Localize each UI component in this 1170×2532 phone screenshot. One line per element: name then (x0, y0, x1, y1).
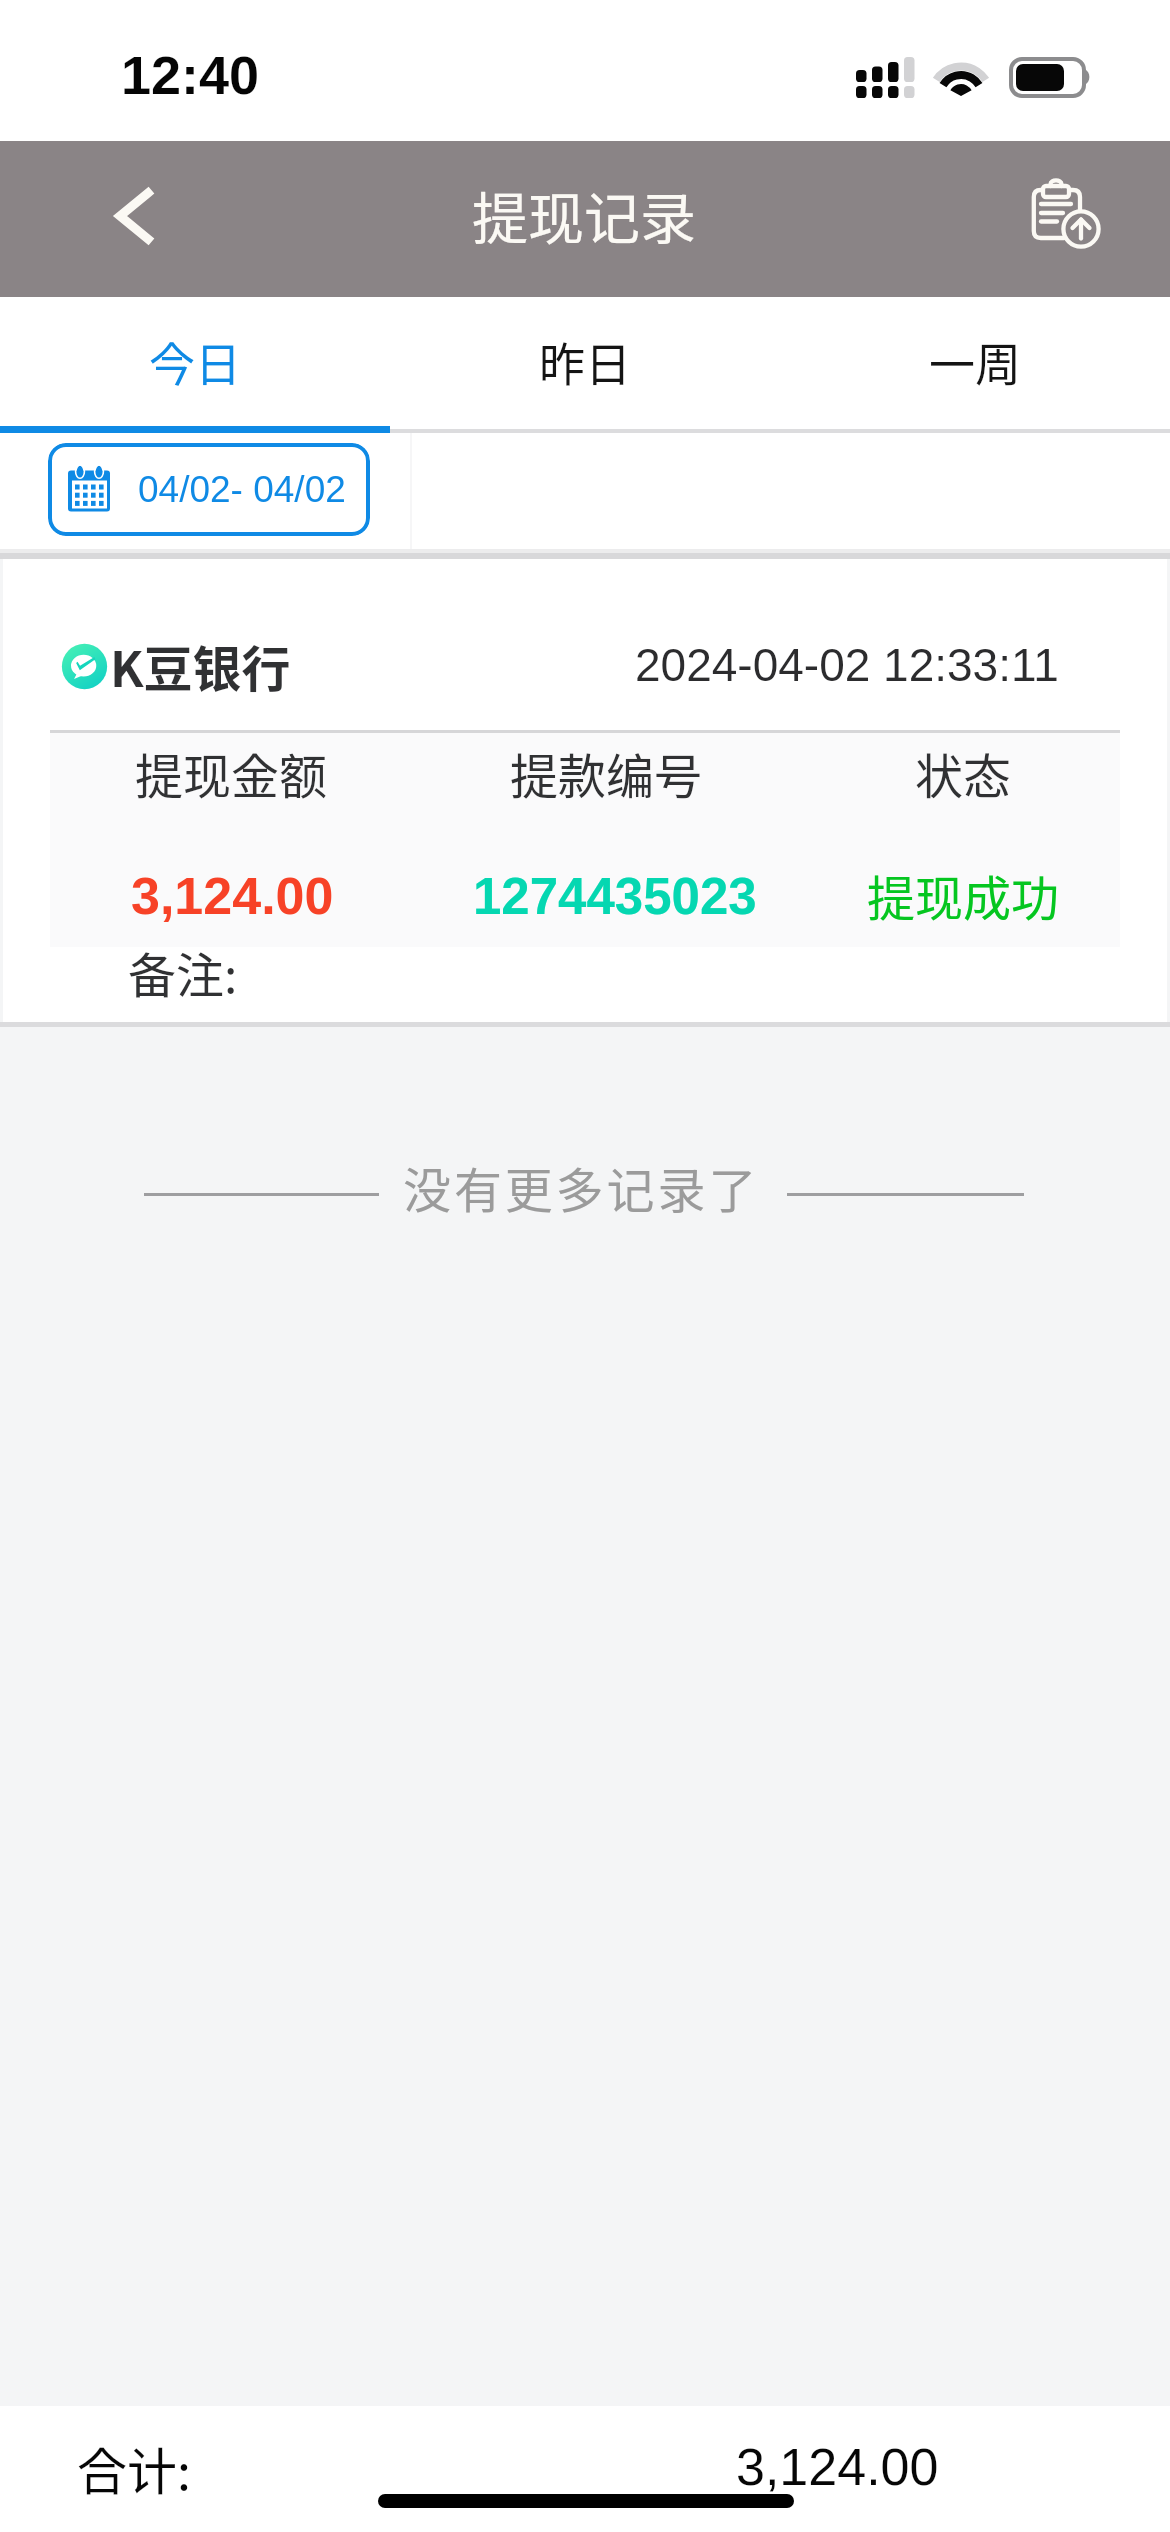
staticText: 12:40 (121, 45, 260, 105)
staticText: 没有更多记录了 (403, 1152, 760, 1222)
button[interactable]: 今日 (0, 297, 390, 433)
staticText: 2024-04-02 12:33:11 (635, 639, 1059, 690)
staticText: 合计: (77, 2432, 191, 2504)
staticText: 今日 (149, 328, 241, 395)
button[interactable]: K豆银行 (3, 559, 1167, 1022)
staticText: 状态 (915, 738, 1012, 808)
staticText: 04/02- 04/02 (138, 469, 346, 510)
staticText: 提现金额 (135, 738, 328, 808)
staticText: 提款编号 (510, 738, 703, 808)
staticText: 备注: (128, 937, 238, 1007)
staticText: 提现记录 (472, 174, 696, 255)
staticText: 3,124.00 (131, 867, 334, 925)
staticText: 一周 (929, 328, 1021, 395)
button[interactable]: Export records (1016, 163, 1116, 275)
staticText: 1274435023 (473, 868, 757, 925)
staticText: 提现成功 (867, 860, 1060, 930)
button[interactable]: 一周 (780, 297, 1170, 433)
button[interactable]: 04/02- 04/02 (48, 443, 370, 536)
staticText: K豆银行 (110, 630, 291, 701)
button[interactable]: Back (66, 169, 176, 279)
button[interactable]: 昨日 (390, 297, 780, 433)
staticText: 3,124.00 (736, 2438, 939, 2496)
staticText: 昨日 (539, 328, 631, 395)
